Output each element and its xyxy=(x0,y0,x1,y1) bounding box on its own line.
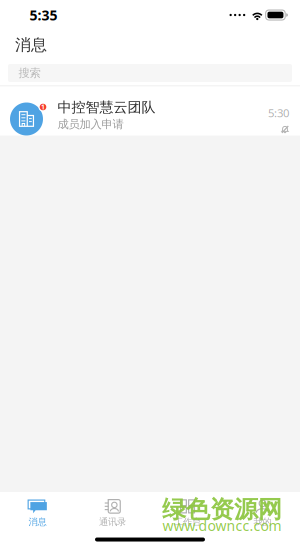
button[interactable]: 搜索 xyxy=(8,64,292,82)
staticText: 成员加入申请 xyxy=(57,117,123,131)
staticText: 绿色资源网 xyxy=(162,494,282,525)
staticText: 1 xyxy=(41,102,45,112)
staticText: 消息 xyxy=(15,35,47,55)
button[interactable]: 消息 xyxy=(0,492,75,535)
staticText: 通讯录 xyxy=(99,516,126,528)
button[interactable]: 工作台 xyxy=(150,492,225,535)
staticText: 5:30 xyxy=(268,105,289,120)
staticText: 5:35 xyxy=(29,5,57,25)
staticText: 我的 xyxy=(253,516,271,528)
button[interactable]: 通讯录 xyxy=(75,492,150,535)
button[interactable]: 我的 xyxy=(225,492,300,535)
staticText: 中控智慧云团队 xyxy=(57,98,155,116)
button[interactable]: 1 xyxy=(0,86,300,135)
staticText: 搜索 xyxy=(18,66,40,80)
staticText: 消息 xyxy=(28,516,46,528)
staticText: 工作台 xyxy=(174,516,201,528)
staticText: www.downcc.com xyxy=(162,516,281,535)
